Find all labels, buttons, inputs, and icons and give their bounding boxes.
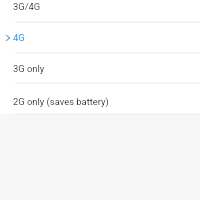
button[interactable]: Currently selected: [0, 22, 200, 53]
other: Currently selected: [6, 35, 10, 41]
staticText: 3G/4G: [13, 1, 41, 12]
button[interactable]: 3G only: [0, 53, 200, 83]
staticText: 4G: [13, 32, 25, 43]
button[interactable]: 3G/4G: [0, 0, 200, 22]
staticText: 2G only (saves battery): [13, 96, 109, 107]
staticText: 3G only: [13, 63, 45, 74]
button[interactable]: 2G only (saves battery): [0, 83, 200, 114]
